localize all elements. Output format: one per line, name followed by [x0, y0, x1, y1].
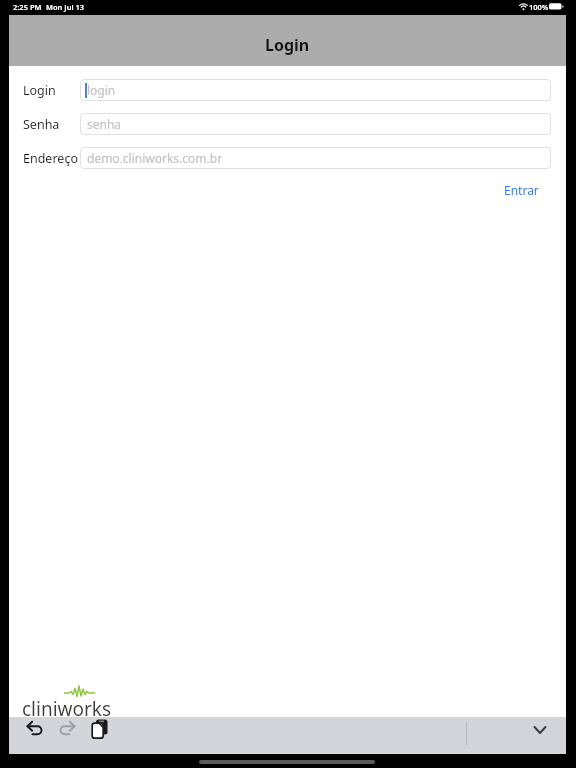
staticText: Mon Jul 13 [46, 2, 85, 12]
staticText: demo.cliniworks.com.br [87, 150, 223, 166]
button[interactable]: demo.cliniworks.com.br [80, 147, 551, 169]
button[interactable] [88, 718, 112, 742]
staticText: cliniworks [22, 696, 112, 722]
button[interactable] [55, 718, 79, 742]
button[interactable] [528, 718, 552, 742]
staticText: login [87, 82, 116, 98]
staticText: Senha [23, 116, 60, 133]
staticText: Login [23, 82, 56, 99]
button[interactable]: senha [80, 113, 551, 135]
button[interactable]: login [80, 79, 551, 101]
staticText: senha [87, 116, 122, 132]
button[interactable]: Entrar [479, 180, 539, 200]
staticText: Entrar [504, 182, 539, 198]
staticText: 2:25 PM [13, 2, 42, 12]
button[interactable] [23, 718, 47, 742]
staticText: 100% [529, 2, 549, 12]
staticText: Endereço [23, 150, 78, 167]
staticText: Login [265, 34, 310, 56]
